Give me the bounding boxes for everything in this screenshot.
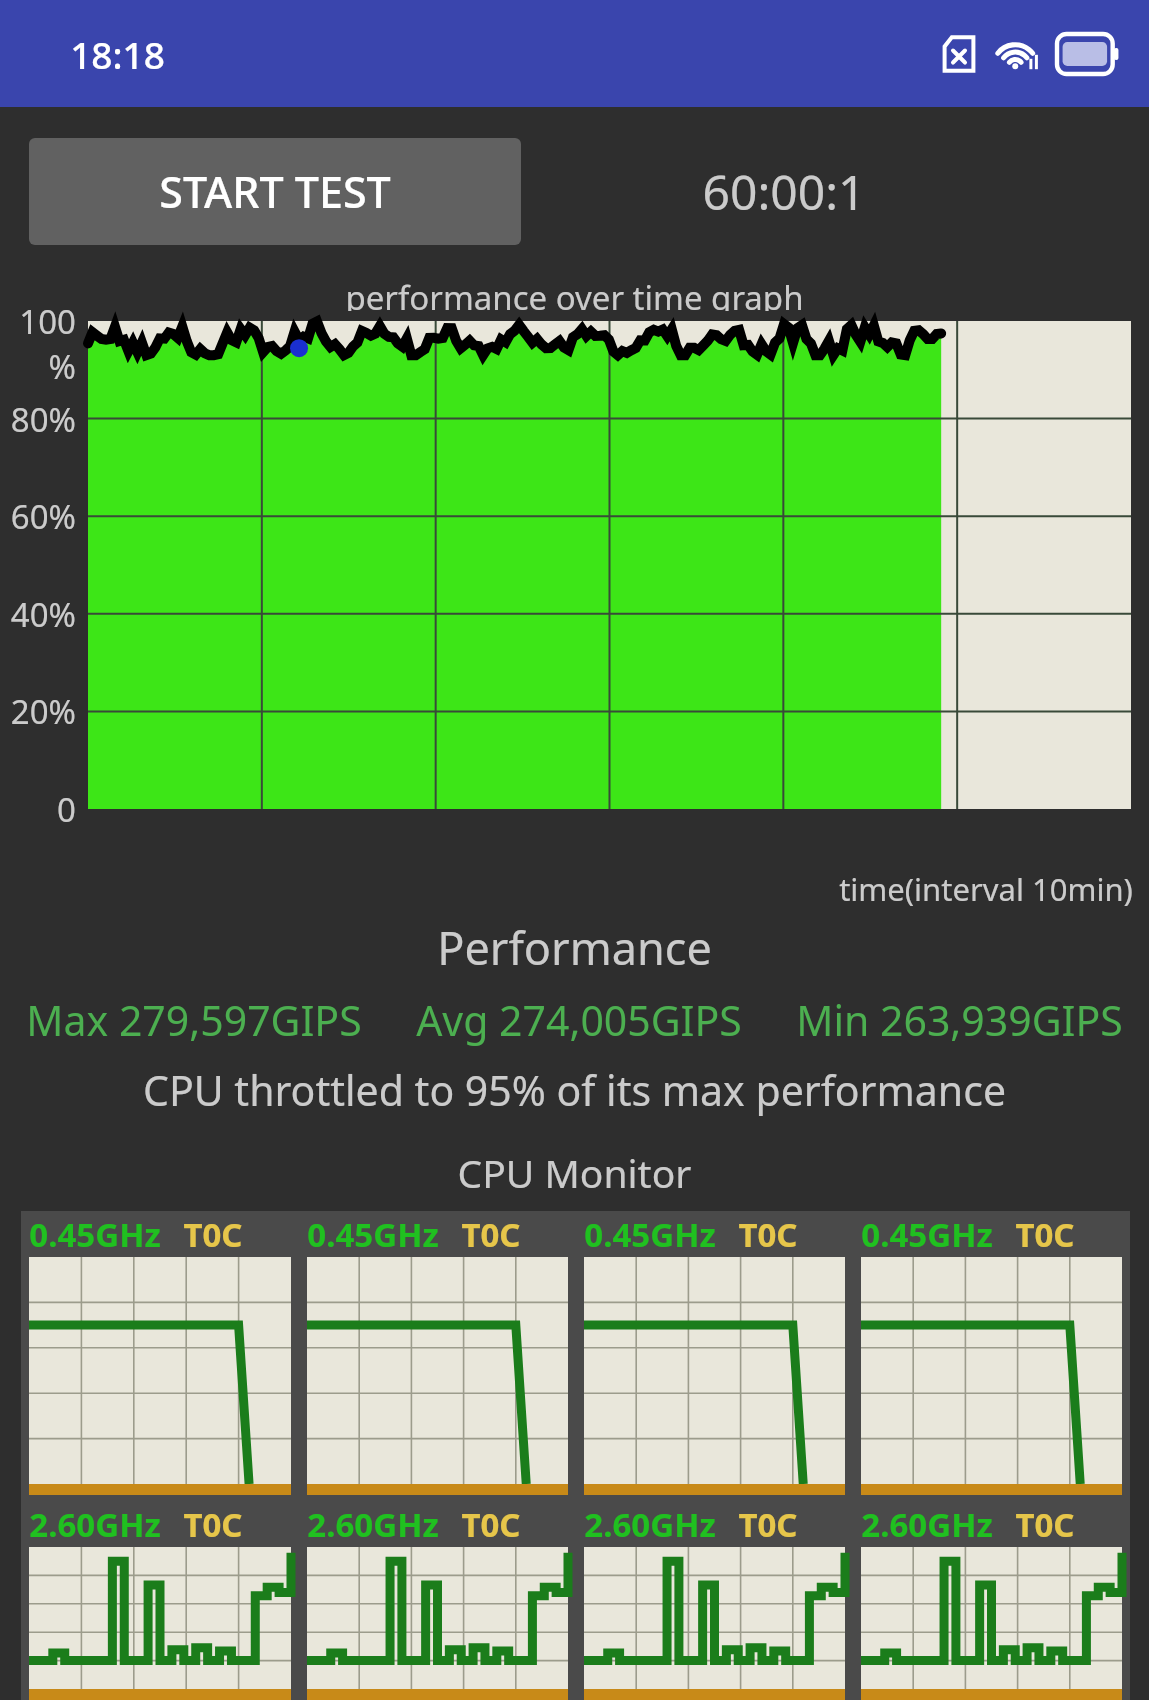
staticText: 18:18 (70, 29, 165, 79)
staticText: T0C (1015, 1212, 1075, 1257)
staticText: T0C (738, 1502, 798, 1547)
staticText: T0C (461, 1502, 521, 1547)
staticText: 2.60GHz (307, 1502, 439, 1547)
staticText: Avg 274,005GIPS (416, 992, 742, 1048)
staticText: 0.45GHz (861, 1212, 993, 1257)
staticText: 0.45GHz (307, 1212, 439, 1257)
button[interactable]: START TEST (29, 138, 521, 245)
staticText: 60% (0, 494, 76, 539)
staticText: T0C (1015, 1502, 1075, 1547)
staticText: 80% (0, 397, 76, 442)
staticText: performance over time graph (345, 275, 804, 311)
staticText: 0.45GHz (584, 1212, 716, 1257)
staticText: Max 279,597GIPS (26, 992, 362, 1048)
staticText: Performance (0, 917, 1149, 978)
staticText: CPU throttled to 95% of its max performa… (0, 1062, 1149, 1118)
other: No SIM (939, 33, 979, 75)
staticText: time(interval 10min) (839, 868, 1133, 910)
other: Wi-Fi (995, 34, 1041, 74)
staticText: T0C (461, 1212, 521, 1257)
staticText: 2.60GHz (861, 1502, 993, 1547)
staticText: START TEST (159, 162, 391, 221)
staticText: 60:00:1 (702, 159, 866, 224)
staticText: 0.45GHz (29, 1212, 161, 1257)
staticText: Min 263,939GIPS (796, 992, 1123, 1048)
staticText: 2.60GHz (584, 1502, 716, 1547)
staticText: T0C (738, 1212, 798, 1257)
staticText: 40% (0, 592, 76, 637)
staticText: CPU Monitor (0, 1146, 1149, 1199)
staticText: 2.60GHz (29, 1502, 161, 1547)
staticText: 100% (0, 299, 76, 389)
staticText: 0 (0, 787, 76, 832)
staticText: 20% (0, 689, 76, 734)
staticText: T0C (183, 1502, 243, 1547)
staticText: T0C (183, 1212, 243, 1257)
other: Battery 32 percent (1057, 34, 1121, 74)
